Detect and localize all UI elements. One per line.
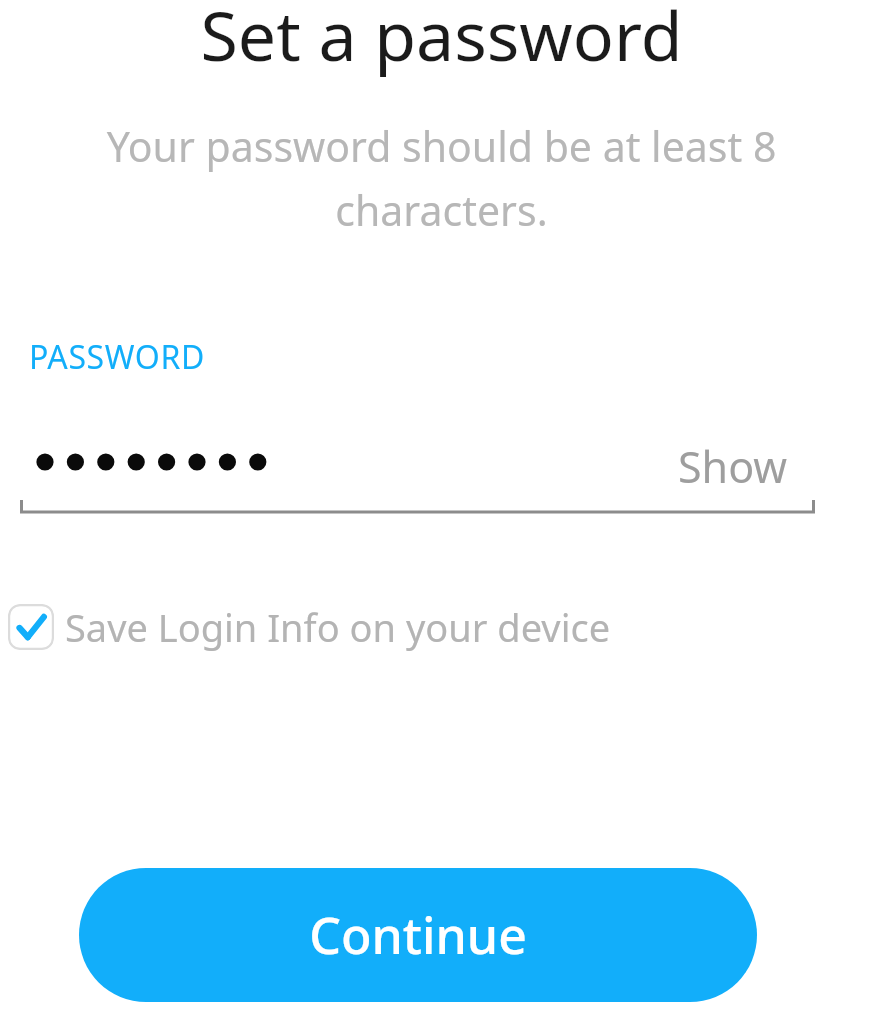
button[interactable]: Save Login Info checkbox, checked xyxy=(0,596,883,658)
staticText: Your password should be at least 8 chara… xyxy=(36,118,847,238)
staticText: Save Login Info on your device xyxy=(65,601,611,653)
button[interactable]: Show xyxy=(0,420,883,520)
button[interactable]: Continue xyxy=(79,868,757,1002)
staticText: Set a password xyxy=(0,0,883,81)
staticText: Continue xyxy=(309,901,527,969)
other: Save Login Info checkbox, checked xyxy=(8,604,54,650)
staticText: PASSWORD xyxy=(29,335,205,379)
staticText: Show xyxy=(678,437,788,496)
button[interactable]: Show xyxy=(672,433,794,500)
